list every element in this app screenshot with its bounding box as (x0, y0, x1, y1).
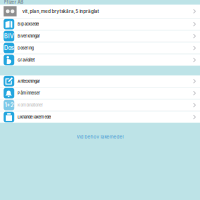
staticText: Anteckningar (17, 79, 40, 84)
button[interactable]: Liknande läkemedel (0, 111, 200, 123)
staticText: Dos (4, 45, 14, 51)
button[interactable]: Påminnelser (0, 87, 200, 99)
button[interactable]: Bipacksedel (0, 18, 200, 30)
staticText: Dosering (17, 46, 33, 50)
staticText: Biverkningar (17, 34, 40, 38)
staticText: BIV (4, 33, 14, 39)
button[interactable]: Dos (0, 42, 200, 54)
staticText: vit, plan, med brytskåra, 5 inpräglat (22, 9, 100, 14)
button[interactable]: Graviditet (0, 54, 200, 66)
staticText: 1+2 (5, 102, 13, 108)
staticText: Graviditet (17, 58, 34, 62)
staticText: Påminnelser (17, 91, 40, 95)
button[interactable]: Anteckningar (0, 75, 200, 87)
button[interactable]: BIV (0, 30, 200, 42)
staticText: Liknande läkemedel (17, 115, 51, 119)
button[interactable]: 1+2 (0, 99, 200, 111)
button[interactable]: Vid behov läkemedel (0, 134, 200, 139)
staticText: Vid behov läkemedel (76, 134, 123, 140)
staticText: Pfizer AB (4, 0, 24, 5)
staticText: Kombinationer (17, 103, 43, 107)
button[interactable]: vit, plan, med brytskåra, 5 inpräglat (0, 5, 200, 18)
staticText: Bipacksedel (17, 22, 39, 26)
